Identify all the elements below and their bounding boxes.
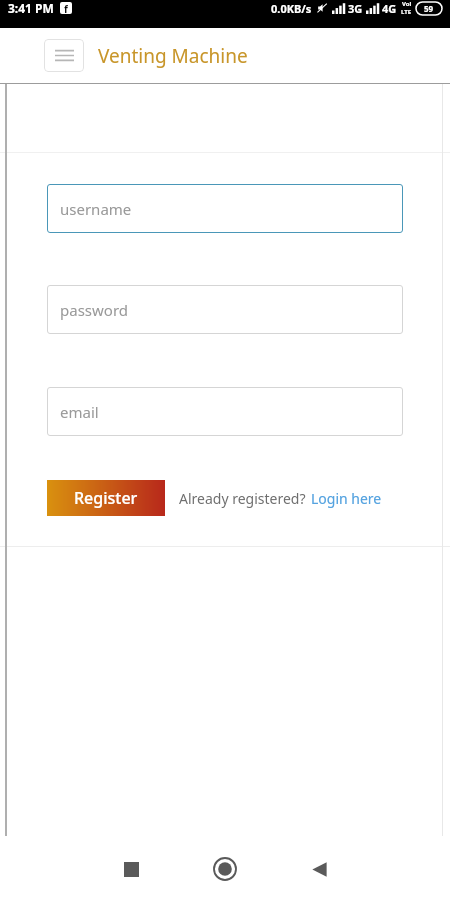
staticText: 3:41 PM bbox=[8, 0, 54, 16]
button[interactable]: Open navigation menu bbox=[44, 39, 84, 72]
staticText: email bbox=[60, 402, 99, 422]
staticText: 59 bbox=[424, 3, 434, 14]
button[interactable]: Login here bbox=[311, 489, 382, 508]
staticText: username bbox=[60, 199, 132, 219]
button[interactable]: Home bbox=[202, 846, 248, 892]
staticText: 4G bbox=[382, 1, 397, 16]
staticText: f bbox=[64, 2, 68, 14]
button[interactable]: Back bbox=[296, 846, 342, 892]
staticText: LTE bbox=[401, 8, 412, 16]
staticText: 3G bbox=[348, 1, 363, 16]
staticText: 0.0KB/s bbox=[271, 1, 312, 16]
staticText: password bbox=[60, 300, 128, 320]
button[interactable]: email bbox=[47, 387, 403, 436]
staticText: Register bbox=[74, 487, 138, 509]
staticText: Vol bbox=[402, 0, 412, 8]
staticText: Login here bbox=[311, 489, 382, 508]
button[interactable]: username bbox=[47, 184, 403, 233]
button[interactable]: Recent apps bbox=[108, 846, 154, 892]
staticText: Venting Machine bbox=[98, 43, 248, 69]
button[interactable]: Register bbox=[47, 480, 165, 516]
button[interactable]: password bbox=[47, 285, 403, 334]
staticText: Already registered? bbox=[179, 489, 306, 508]
